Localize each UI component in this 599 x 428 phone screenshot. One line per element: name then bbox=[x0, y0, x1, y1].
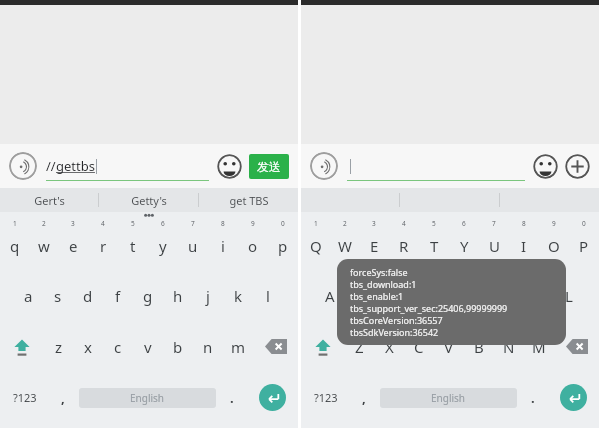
button[interactable]: s bbox=[43, 270, 73, 321]
button[interactable]: 7 bbox=[479, 219, 509, 270]
button[interactable]: 5 bbox=[118, 219, 148, 270]
button[interactable]: Emoji bbox=[217, 154, 242, 179]
staticText: 0 bbox=[281, 219, 285, 228]
button[interactable]: C bbox=[404, 321, 434, 372]
button[interactable]: a bbox=[14, 270, 43, 321]
button[interactable]: S bbox=[344, 270, 374, 321]
button[interactable]: ?123 bbox=[301, 372, 350, 423]
button[interactable]: Enter bbox=[547, 372, 599, 423]
staticText: , bbox=[61, 389, 65, 407]
button[interactable]: Voice input bbox=[310, 152, 338, 180]
button[interactable]: 9 bbox=[539, 219, 569, 270]
button[interactable]: 0 bbox=[268, 219, 298, 270]
button[interactable]: . bbox=[218, 372, 246, 423]
button[interactable]: m bbox=[223, 321, 253, 372]
staticText: English bbox=[431, 391, 466, 405]
button[interactable]: J bbox=[494, 270, 524, 321]
button[interactable]: 5 bbox=[419, 219, 449, 270]
button[interactable]: get TBS bbox=[199, 188, 298, 212]
button[interactable]: B bbox=[464, 321, 494, 372]
staticText: I bbox=[521, 236, 527, 256]
button[interactable]: ?123 bbox=[0, 372, 49, 423]
staticText: y bbox=[159, 236, 167, 256]
button[interactable]: 2 bbox=[330, 219, 359, 270]
staticText: forceSys:false bbox=[350, 266, 408, 278]
button[interactable]: 3 bbox=[58, 219, 88, 270]
button[interactable]: Enter bbox=[246, 372, 298, 423]
button[interactable] bbox=[347, 151, 525, 181]
button[interactable]: G bbox=[434, 270, 464, 321]
button[interactable]: c bbox=[103, 321, 133, 372]
staticText: . bbox=[531, 389, 535, 407]
button[interactable]: 8 bbox=[208, 219, 238, 270]
staticText: k bbox=[234, 286, 243, 306]
staticText: 2 bbox=[343, 219, 347, 228]
button[interactable]: z bbox=[44, 321, 73, 372]
button[interactable]: 0 bbox=[569, 219, 599, 270]
button[interactable]: j bbox=[193, 270, 223, 321]
staticText: Q bbox=[310, 236, 322, 256]
button[interactable]: d bbox=[73, 270, 103, 321]
button[interactable]: // bbox=[46, 151, 209, 181]
button[interactable]: l bbox=[253, 270, 283, 321]
button[interactable]: 1 bbox=[0, 219, 29, 270]
staticText: tbsCoreVersion:36557 bbox=[350, 314, 443, 326]
button[interactable]: X bbox=[374, 321, 404, 372]
button[interactable]: Backspace bbox=[253, 321, 298, 372]
staticText: G bbox=[444, 286, 455, 306]
staticText: 发送 bbox=[257, 159, 281, 174]
button[interactable]: , bbox=[350, 372, 378, 423]
button[interactable]: L bbox=[554, 270, 584, 321]
button[interactable]: h bbox=[163, 270, 193, 321]
button[interactable]: Shift bbox=[0, 321, 44, 372]
button[interactable]: g bbox=[133, 270, 163, 321]
button[interactable]: M bbox=[524, 321, 554, 372]
staticText: g bbox=[143, 286, 153, 306]
button[interactable]: . bbox=[519, 372, 547, 423]
button[interactable]: 发送 bbox=[249, 154, 289, 179]
staticText: 5 bbox=[131, 219, 135, 228]
button[interactable]: 6 bbox=[449, 219, 479, 270]
staticText: // bbox=[46, 157, 56, 175]
button[interactable]: Voice input bbox=[9, 152, 37, 180]
button[interactable]: Gert's bbox=[0, 188, 98, 212]
button[interactable]: Shift bbox=[301, 321, 345, 372]
button[interactable]: n bbox=[193, 321, 223, 372]
button[interactable]: 7 bbox=[178, 219, 208, 270]
staticText: 9 bbox=[552, 219, 556, 228]
button[interactable]: 3 bbox=[359, 219, 389, 270]
button[interactable]: 2 bbox=[29, 219, 58, 270]
button[interactable]: 1 bbox=[301, 219, 330, 270]
staticText: 1 bbox=[13, 219, 17, 228]
button[interactable]: A bbox=[315, 270, 344, 321]
button[interactable]: b bbox=[163, 321, 193, 372]
button[interactable]: English bbox=[79, 388, 216, 408]
button[interactable]: v bbox=[133, 321, 163, 372]
button[interactable]: V bbox=[434, 321, 464, 372]
button[interactable]: 6 bbox=[148, 219, 178, 270]
staticText: q bbox=[10, 236, 20, 256]
button[interactable]: 8 bbox=[509, 219, 539, 270]
staticText: e bbox=[69, 236, 78, 256]
button[interactable]: English bbox=[380, 388, 517, 408]
button[interactable]: Emoji bbox=[533, 154, 558, 179]
button[interactable]: More options bbox=[565, 154, 590, 179]
button[interactable]: N bbox=[494, 321, 524, 372]
button[interactable]: , bbox=[49, 372, 77, 423]
staticText: B bbox=[474, 337, 484, 357]
button[interactable]: F bbox=[404, 270, 434, 321]
button[interactable]: 4 bbox=[88, 219, 118, 270]
button[interactable]: Z bbox=[345, 321, 374, 372]
button[interactable]: k bbox=[223, 270, 253, 321]
button[interactable]: x bbox=[73, 321, 103, 372]
button[interactable]: D bbox=[374, 270, 404, 321]
button[interactable]: Backspace bbox=[554, 321, 599, 372]
button[interactable]: Getty's bbox=[99, 188, 198, 212]
button[interactable]: 4 bbox=[389, 219, 419, 270]
button[interactable]: H bbox=[464, 270, 494, 321]
staticText: E bbox=[370, 236, 379, 256]
button[interactable]: f bbox=[103, 270, 133, 321]
button[interactable]: 9 bbox=[238, 219, 268, 270]
staticText: c bbox=[114, 337, 122, 357]
